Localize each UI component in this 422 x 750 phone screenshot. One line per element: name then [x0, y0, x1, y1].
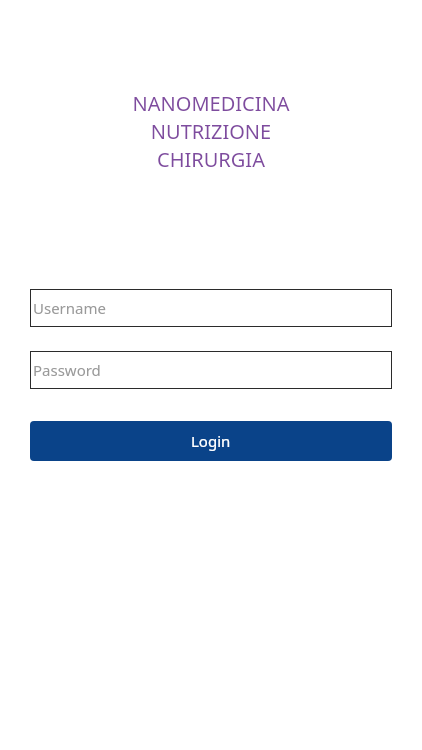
- staticText: Password: [33, 360, 101, 380]
- button[interactable]: Password: [30, 351, 392, 389]
- staticText: Username: [33, 298, 106, 318]
- button[interactable]: Username: [30, 289, 392, 327]
- staticText: CHIRURGIA: [0, 146, 422, 173]
- button[interactable]: Login: [30, 421, 392, 461]
- staticText: NANOMEDICINA: [0, 90, 422, 117]
- staticText: NUTRIZIONE: [0, 118, 422, 145]
- staticText: Login: [191, 431, 231, 451]
